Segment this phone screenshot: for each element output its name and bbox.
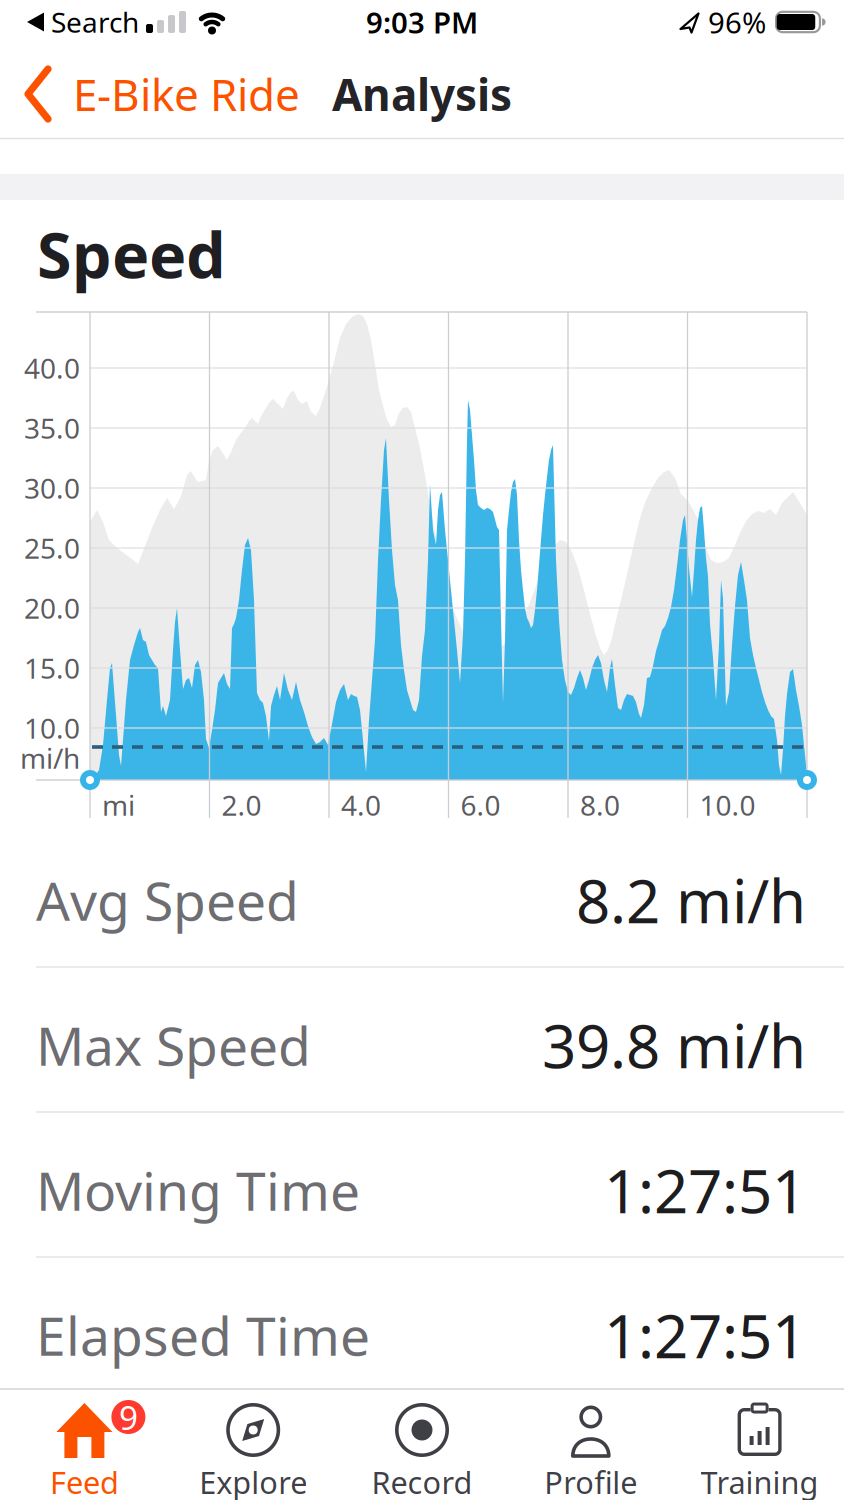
staticText: E-Bike Ride <box>73 65 300 123</box>
staticText: 4.0 <box>341 786 381 824</box>
staticText: mi <box>102 786 135 824</box>
staticText: mi/h <box>20 739 80 777</box>
button[interactable]: Record <box>338 1390 506 1498</box>
staticText: 1:27:51 <box>604 1295 806 1375</box>
staticText: Avg Speed <box>36 865 299 935</box>
staticText: 96% <box>708 2 766 41</box>
staticText: Max Speed <box>36 1010 311 1080</box>
button[interactable]: Training <box>676 1390 844 1498</box>
staticText: 9 <box>119 1395 138 1439</box>
staticText: 10.0 <box>699 786 755 824</box>
staticText: Analysis <box>332 65 512 123</box>
staticText: Feed <box>50 1462 119 1500</box>
staticText: 1:27:51 <box>604 1150 806 1230</box>
staticText: 35.0 <box>24 409 80 447</box>
staticText: 6.0 <box>460 786 500 824</box>
staticText: 9:03 PM <box>366 2 478 41</box>
staticText: 30.0 <box>24 469 80 507</box>
staticText: Speed <box>37 212 226 296</box>
staticText: Profile <box>544 1462 637 1500</box>
staticText: 25.0 <box>24 529 80 567</box>
staticText: 8.2 mi/h <box>576 860 806 940</box>
staticText: 2.0 <box>221 786 261 824</box>
staticText: Moving Time <box>36 1155 360 1225</box>
staticText: 20.0 <box>24 589 80 627</box>
staticText: Explore <box>199 1462 307 1500</box>
button[interactable]: Feed <box>0 1390 168 1498</box>
staticText: Record <box>371 1462 472 1500</box>
button[interactable]: E-Bike Ride <box>24 67 344 121</box>
button[interactable]: Profile <box>507 1390 675 1498</box>
staticText: 10.0 <box>24 709 80 747</box>
staticText: 39.8 mi/h <box>542 1005 806 1085</box>
staticText: 15.0 <box>24 649 80 687</box>
staticText: Elapsed Time <box>36 1300 370 1370</box>
staticText: 8.0 <box>580 786 620 824</box>
staticText: 40.0 <box>24 349 80 387</box>
staticText: Search <box>51 3 139 41</box>
button[interactable]: Explore <box>169 1390 337 1498</box>
staticText: Training <box>701 1462 819 1500</box>
